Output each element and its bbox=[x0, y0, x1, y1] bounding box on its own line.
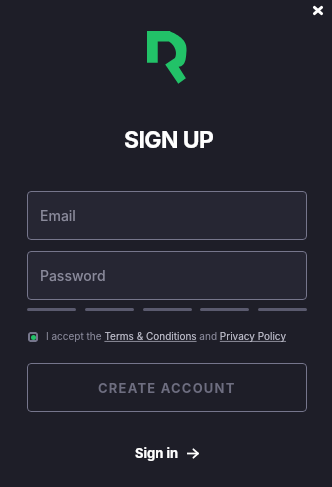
button[interactable]: Close bbox=[306, 0, 330, 20]
button[interactable]: Sign in bbox=[127, 440, 208, 466]
button[interactable]: CREATE ACCOUNT bbox=[27, 363, 307, 412]
button[interactable]: Email bbox=[27, 191, 307, 240]
staticText: CREATE ACCOUNT bbox=[98, 380, 236, 396]
staticText: I accept the Terms & Conditions and Priv… bbox=[46, 330, 287, 342]
staticText: Sign in bbox=[135, 445, 179, 461]
button[interactable]: Password bbox=[27, 251, 307, 300]
staticText: SIGN UP bbox=[124, 126, 214, 154]
button[interactable]: Accept terms and conditions bbox=[27, 331, 38, 342]
staticText: Email bbox=[40, 207, 76, 224]
staticText: Password bbox=[40, 267, 106, 284]
